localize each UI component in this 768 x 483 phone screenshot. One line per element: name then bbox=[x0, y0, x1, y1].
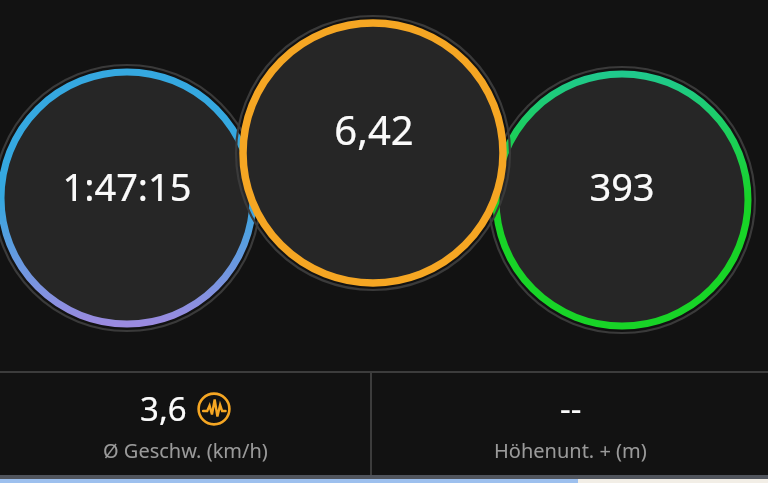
staticText: Höhenunt. + (m) bbox=[494, 437, 647, 464]
button[interactable]: -- bbox=[372, 373, 768, 476]
staticText: 393 bbox=[589, 160, 655, 212]
staticText: 3,6 bbox=[140, 386, 187, 431]
button[interactable]: Distanz 6,42 km bbox=[243, 102, 503, 192]
staticText: 6,42 bbox=[334, 102, 414, 156]
button[interactable]: 3,6 bbox=[0, 373, 370, 476]
staticText: 1:47:15 bbox=[62, 160, 192, 212]
button[interactable]: Kalorien 393 bbox=[492, 160, 752, 250]
staticText: -- bbox=[560, 386, 582, 431]
staticText: Ø Geschw. (km/h) bbox=[103, 437, 268, 464]
button[interactable]: Zeit 1:47:15 bbox=[0, 160, 257, 250]
